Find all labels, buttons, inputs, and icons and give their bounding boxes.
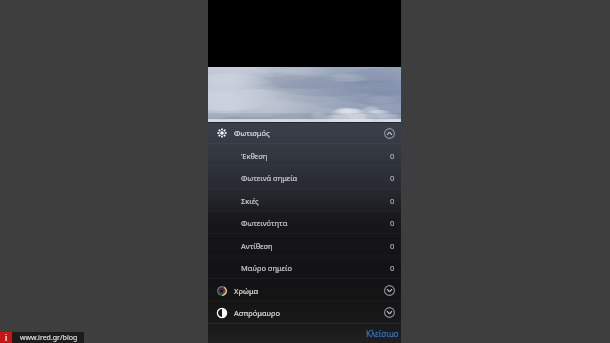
staticText: Μαύρο σημείο: [241, 263, 292, 273]
button[interactable]: Κλείσιμο: [356, 324, 401, 343]
button[interactable]: Μαύρο σημείο: [208, 256, 401, 279]
staticText: Σκιές: [241, 196, 259, 206]
staticText: i: [5, 332, 8, 343]
button[interactable]: Έκθεση: [208, 144, 401, 167]
staticText: 0: [390, 263, 395, 273]
button[interactable]: Ασπρόμαυρο: [208, 301, 401, 324]
button[interactable]: Σκιές: [208, 189, 401, 212]
staticText: www.ired.gr/blog: [20, 333, 78, 343]
other: Expand Ασπρόμαυρο section: [384, 307, 395, 318]
staticText: 0: [390, 218, 395, 228]
other: Expand Χρώμα section: [384, 285, 395, 296]
button[interactable]: Αντίθεση: [208, 234, 401, 257]
staticText: Κλείσιμο: [366, 328, 399, 337]
staticText: 0: [390, 151, 395, 161]
staticText: 0: [390, 241, 395, 251]
staticText: Έκθεση: [241, 151, 268, 161]
staticText: Φωτεινά σημεία: [241, 173, 298, 183]
staticText: Φωτισμός: [234, 128, 270, 138]
staticText: Χρώμα: [234, 286, 259, 296]
button[interactable]: Φωτεινότητα: [208, 211, 401, 234]
button[interactable]: Φωτισμός: [208, 122, 401, 144]
staticText: 0: [390, 173, 395, 183]
button[interactable]: Χρώμα: [208, 279, 401, 302]
staticText: Φωτεινότητα: [241, 218, 288, 228]
other: Collapse Light section: [384, 128, 395, 139]
staticText: Αντίθεση: [241, 241, 273, 251]
staticText: 0: [390, 196, 395, 206]
staticText: Ασπρόμαυρο: [234, 308, 281, 318]
button[interactable]: Φωτεινά σημεία: [208, 166, 401, 189]
